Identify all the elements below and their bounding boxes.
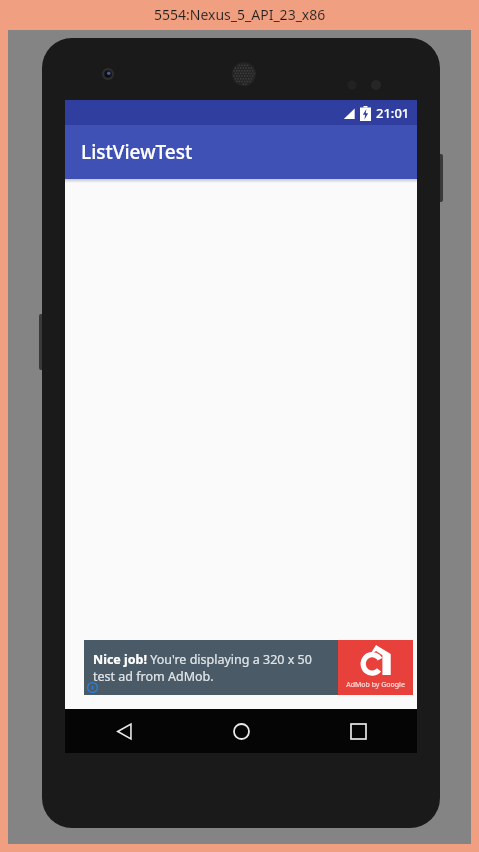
button[interactable]: Recent apps — [300, 709, 417, 753]
staticText: 5554:Nexus_5_API_23_x86 — [154, 5, 326, 24]
button[interactable]: Nice job! You're displaying a 320 x 50 t… — [84, 640, 413, 695]
button[interactable]: Ad information — [87, 682, 98, 693]
staticText: AdMob by Google — [346, 680, 405, 690]
staticText: Nice job! You're displaying a 320 x 50 t… — [93, 651, 332, 684]
button[interactable]: ListViewTest — [65, 125, 417, 179]
staticText: ListViewTest — [81, 139, 193, 165]
button[interactable]: Home — [183, 709, 300, 753]
button[interactable]: AdMob by Google — [338, 640, 413, 695]
button[interactable]: Back — [65, 709, 183, 753]
staticText: 21:01 — [376, 104, 410, 122]
